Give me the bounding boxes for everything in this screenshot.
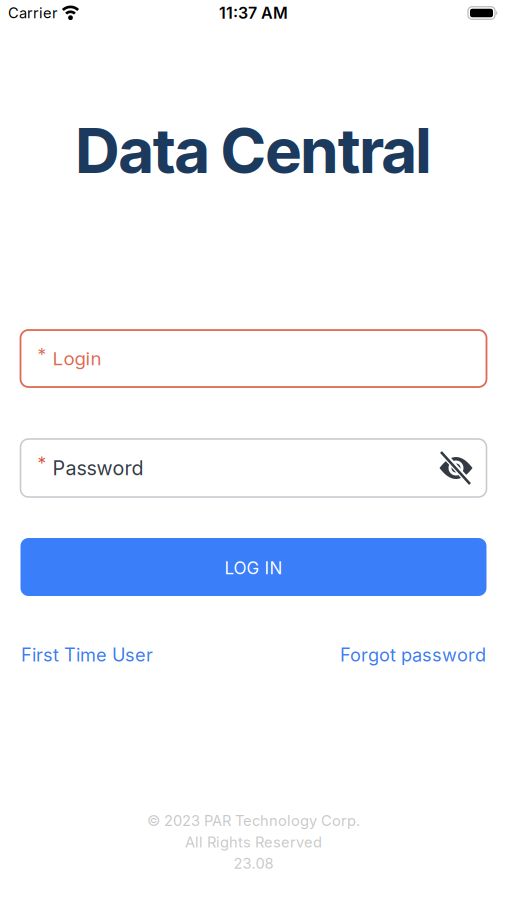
button[interactable]: First Time User xyxy=(21,644,153,666)
button[interactable]: Login xyxy=(20,330,486,387)
staticText: 11:37 AM xyxy=(219,4,288,22)
staticText: 23.08 xyxy=(233,855,273,872)
staticText: Login xyxy=(52,347,101,369)
staticText: First Time User xyxy=(21,644,153,666)
staticText: All Rights Reserved xyxy=(185,833,322,851)
staticText: * xyxy=(37,344,46,365)
staticText: Data Central xyxy=(76,113,431,188)
button[interactable]: Forgot password xyxy=(340,644,486,666)
button[interactable]: Password xyxy=(20,439,486,497)
button[interactable]: Show password xyxy=(439,455,472,481)
staticText: Password xyxy=(52,456,143,480)
staticText: * xyxy=(37,453,46,473)
staticText: Carrier xyxy=(8,4,58,22)
button[interactable]: LOG IN xyxy=(20,538,486,596)
staticText: Forgot password xyxy=(340,644,486,666)
staticText: © 2023 PAR Technology Corp. xyxy=(147,812,360,829)
staticText: LOG IN xyxy=(224,558,282,578)
